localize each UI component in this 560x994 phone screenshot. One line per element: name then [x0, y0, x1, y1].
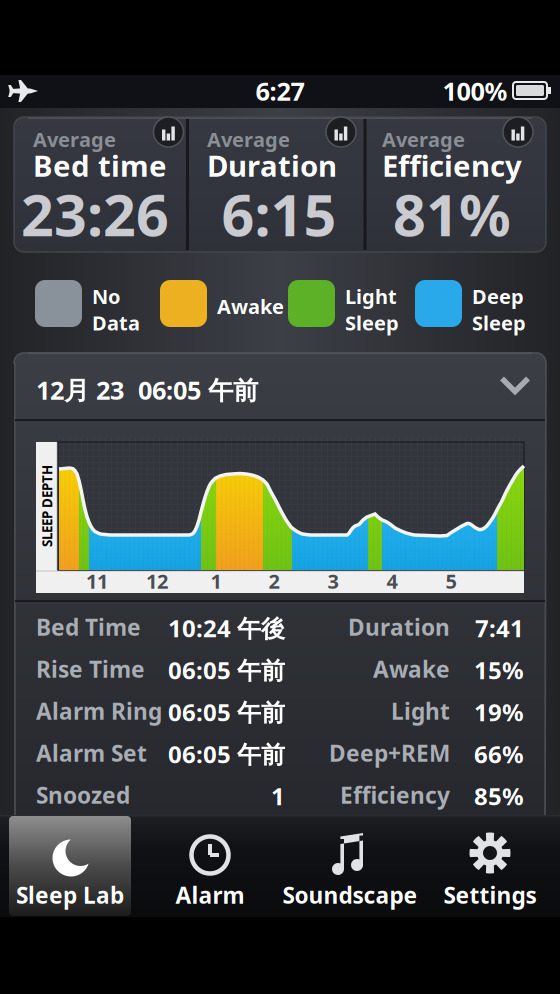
staticText: 100% [442, 74, 507, 108]
button[interactable]: Select day [14, 352, 546, 418]
staticText: 7:41 [475, 612, 524, 644]
staticText: Average [382, 126, 465, 153]
button[interactable]: Sleep Lab [0, 815, 140, 917]
staticText: SLEEP DEPTH [6, 497, 88, 515]
staticText: 85% [474, 780, 524, 812]
staticText: 6:15 [221, 176, 336, 252]
staticText: Average [33, 126, 116, 153]
button[interactable]: Statistics [503, 117, 533, 147]
staticText: 12 [146, 568, 168, 594]
staticText: Light [391, 696, 450, 726]
staticText: 06:05 午前 [168, 654, 285, 686]
staticText: Snoozed [36, 780, 130, 810]
staticText: 23:26 [21, 176, 169, 252]
button[interactable]: Statistics [326, 117, 356, 147]
staticText: Bed Time [36, 612, 141, 642]
staticText: Rise Time [36, 654, 145, 684]
staticText: 06:05 午前 [168, 738, 285, 770]
staticText: Deep Sleep [472, 283, 526, 336]
staticText: Soundscape [282, 880, 417, 910]
staticText: Deep+REM [329, 738, 450, 768]
staticText: 66% [474, 738, 524, 770]
staticText: Alarm [175, 880, 244, 910]
staticText: No Data [92, 283, 140, 336]
button[interactable]: Soundscape [280, 815, 420, 917]
staticText: Sleep Lab [16, 880, 124, 910]
staticText: Efficiency [340, 780, 450, 810]
staticText: 2 [268, 568, 279, 594]
staticText: Alarm Ring [36, 696, 162, 726]
staticText: Alarm Set [36, 738, 147, 768]
staticText: Bed time [33, 146, 167, 185]
staticText: 4 [386, 568, 397, 594]
staticText: Efficiency [382, 146, 522, 185]
staticText: Awake [373, 654, 450, 684]
staticText: 15% [474, 654, 524, 686]
staticText: Light Sleep [345, 283, 399, 336]
staticText: Duration [207, 146, 337, 185]
staticText: Settings [443, 880, 536, 910]
staticText: Duration [348, 612, 450, 642]
staticText: Average [207, 126, 290, 153]
staticText: 1 [271, 780, 285, 812]
staticText: 11 [86, 568, 108, 594]
button[interactable]: Settings [420, 815, 560, 917]
staticText: 5 [445, 568, 456, 594]
staticText: Awake [217, 293, 284, 320]
staticText: 1 [210, 568, 221, 594]
staticText: 3 [327, 568, 338, 594]
button[interactable]: Statistics [153, 117, 183, 147]
staticText: 19% [474, 696, 524, 728]
button[interactable]: Alarm [140, 815, 280, 917]
staticText: 81% [393, 176, 511, 252]
staticText: 12月 23 06:05 午前 [36, 373, 258, 407]
staticText: 06:05 午前 [168, 696, 285, 728]
staticText: 10:24 午後 [168, 612, 285, 644]
staticText: 6:27 [255, 74, 304, 108]
